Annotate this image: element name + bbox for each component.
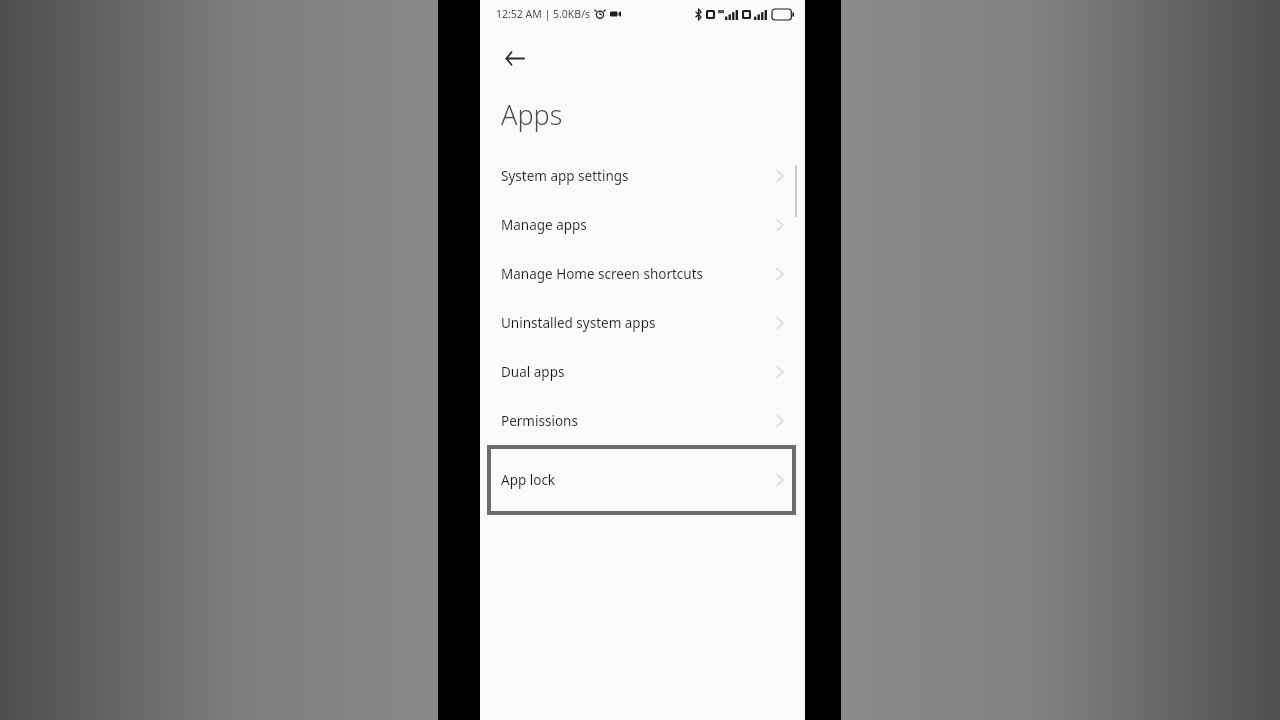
button[interactable]: Back	[494, 38, 534, 78]
staticText: Dual apps	[501, 363, 565, 381]
staticText: Manage Home screen shortcuts	[501, 265, 704, 283]
staticText: Permissions	[501, 412, 578, 430]
staticText: App lock	[501, 471, 556, 489]
staticText: System app settings	[501, 167, 629, 185]
staticText: Apps	[501, 96, 563, 133]
button[interactable]: Manage Home screen shortcuts	[480, 249, 805, 298]
button[interactable]: Permissions	[480, 396, 805, 445]
button[interactable]: Dual apps	[480, 347, 805, 396]
button[interactable]: Uninstalled system apps	[480, 298, 805, 347]
staticText: Uninstalled system apps	[501, 314, 656, 332]
button[interactable]: Manage apps	[480, 200, 805, 249]
button[interactable]: App lock	[487, 445, 796, 515]
staticText: Manage apps	[501, 216, 587, 234]
staticText: 12:52 AM | 5.0KB/s	[496, 7, 591, 21]
button[interactable]: System app settings	[480, 151, 805, 200]
